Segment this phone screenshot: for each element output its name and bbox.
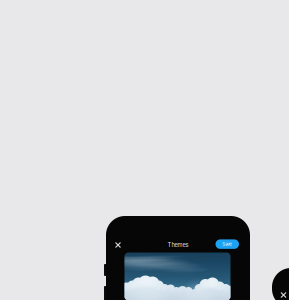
button[interactable]: Save <box>215 239 239 249</box>
button[interactable]: Close <box>275 287 289 300</box>
button[interactable]: Close <box>110 237 126 253</box>
staticText: Save <box>222 241 232 247</box>
staticText: Themes <box>167 241 188 248</box>
